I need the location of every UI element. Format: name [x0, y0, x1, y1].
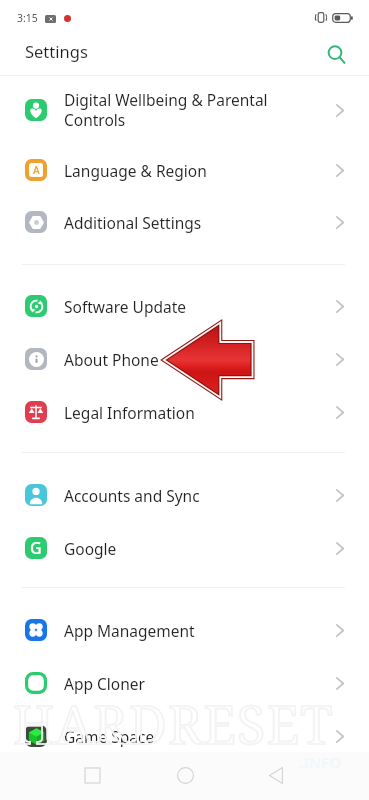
button[interactable]: Home	[167, 757, 203, 793]
staticText: HARDRESET	[13, 688, 334, 759]
staticText: 3:15	[17, 11, 38, 25]
button[interactable]: Additional Settings	[0, 198, 369, 246]
staticText: Language & Region	[64, 160, 207, 181]
button[interactable]: About Phone	[0, 335, 369, 383]
staticText: Accounts and Sync	[64, 485, 200, 506]
button[interactable]: A	[0, 146, 369, 194]
button[interactable]: Search	[321, 39, 351, 69]
staticText: A	[33, 163, 40, 177]
staticText: Settings	[25, 40, 88, 62]
staticText: Game Space	[64, 726, 155, 747]
button[interactable]: Accounts and Sync	[0, 471, 369, 519]
staticText: About Phone	[64, 349, 159, 370]
button[interactable]: App Management	[0, 606, 369, 654]
button[interactable]: Legal Information	[0, 388, 369, 436]
staticText: Google	[64, 538, 117, 559]
staticText: Legal Information	[64, 402, 195, 423]
button[interactable]: Digital Wellbeing & Parental Controls	[0, 86, 369, 134]
staticText: .INFO	[299, 752, 342, 772]
staticText: G	[30, 537, 42, 559]
button[interactable]: Recents	[74, 757, 110, 793]
button[interactable]: Back	[258, 757, 294, 793]
staticText: Software Update	[64, 296, 186, 317]
button[interactable]: Software Update	[0, 282, 369, 330]
button[interactable]: App Cloner	[0, 659, 369, 707]
staticText: Additional Settings	[64, 212, 202, 233]
button[interactable]: Game Space	[0, 712, 369, 760]
staticText: App Management	[64, 620, 195, 641]
staticText: App Cloner	[64, 673, 145, 694]
button[interactable]: G	[0, 524, 369, 572]
staticText: Digital Wellbeing & Parental Controls	[64, 89, 268, 131]
